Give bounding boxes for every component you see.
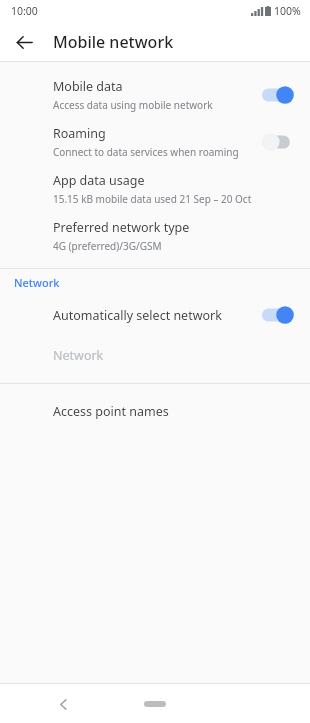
staticText: App data usage [53, 172, 145, 189]
staticText: Preferred network type [53, 219, 190, 236]
staticText: 10:00 [11, 4, 38, 18]
button[interactable]: Mobile data [0, 71, 310, 118]
button[interactable]: Home [144, 701, 166, 707]
staticText: Network [53, 347, 104, 364]
button[interactable]: Off [262, 131, 296, 153]
button[interactable]: Back [6, 24, 42, 60]
staticText: Roaming [53, 125, 106, 142]
button[interactable]: Back [48, 689, 78, 719]
button[interactable]: On [262, 304, 296, 326]
button[interactable]: Automatically select network [0, 295, 310, 335]
button[interactable]: App data usage [0, 165, 310, 212]
staticText: 4G (preferred)/3G/GSM [53, 239, 162, 253]
staticText: 15.15 kB mobile data used 21 Sep – 20 Oc… [53, 192, 252, 206]
button[interactable]: Access point names [0, 391, 310, 431]
staticText: Automatically select network [53, 307, 222, 324]
button: Network [0, 335, 310, 375]
staticText: Access point names [53, 403, 169, 420]
staticText: Network [14, 275, 60, 290]
staticText: Mobile network [53, 31, 174, 53]
staticText: 100% [274, 4, 301, 18]
button[interactable]: On [262, 84, 296, 106]
staticText: Access data using mobile network [53, 98, 213, 112]
staticText: Mobile data [53, 78, 123, 95]
staticText: Connect to data services when roaming [53, 145, 239, 159]
button[interactable]: Preferred network type [0, 212, 310, 259]
button[interactable]: Roaming [0, 118, 310, 165]
